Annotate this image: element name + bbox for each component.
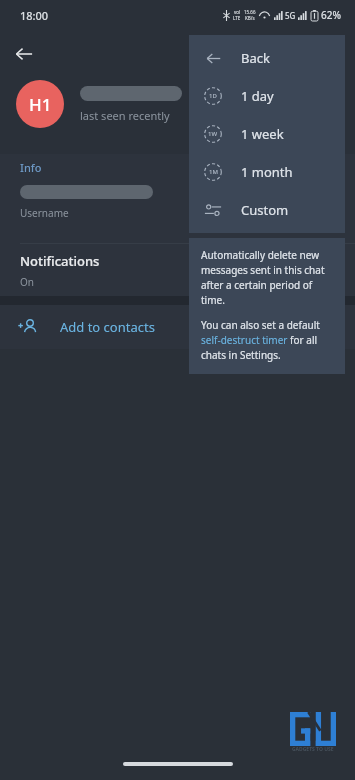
button[interactable]: 1M	[189, 153, 345, 191]
staticText: Info	[20, 160, 42, 175]
staticText: vol	[234, 9, 241, 15]
button[interactable]: Custom	[189, 191, 345, 229]
staticText: Add to contacts	[60, 318, 155, 336]
button[interactable]: Add to contacts	[0, 305, 355, 349]
staticText: On	[20, 275, 34, 289]
button[interactable]: Back	[189, 39, 345, 77]
staticText: 1 week	[241, 125, 284, 143]
staticText: LTE	[233, 15, 241, 21]
staticText: Back	[241, 49, 270, 67]
button[interactable]: 1D	[189, 77, 345, 115]
staticText: H1	[29, 93, 52, 116]
staticText: 1 month	[241, 163, 293, 181]
staticText: Notifications	[20, 252, 100, 270]
staticText: last seen recently	[80, 108, 170, 123]
staticText: 18:00	[20, 8, 49, 23]
staticText: Username	[20, 206, 69, 220]
staticText: You can also set a default self-destruct…	[201, 318, 335, 362]
staticText: GADGETS TO USE	[292, 746, 334, 753]
staticText: Automatically delete new messages sent i…	[201, 248, 335, 307]
button[interactable]: Back	[0, 30, 48, 78]
staticText: KB/s	[245, 15, 255, 21]
staticText: 15.66	[244, 9, 256, 15]
button[interactable]: 1W	[189, 115, 345, 153]
staticText: 5G	[285, 10, 296, 21]
button[interactable]: Notifications	[0, 244, 355, 296]
staticText: 1M	[209, 168, 218, 176]
staticText: 62%	[321, 8, 341, 22]
staticText: 1W	[208, 130, 218, 138]
staticText: 1D	[209, 92, 217, 100]
button[interactable]: H1	[16, 80, 64, 128]
staticText: Custom	[241, 201, 289, 219]
staticText: 1 day	[241, 87, 274, 105]
